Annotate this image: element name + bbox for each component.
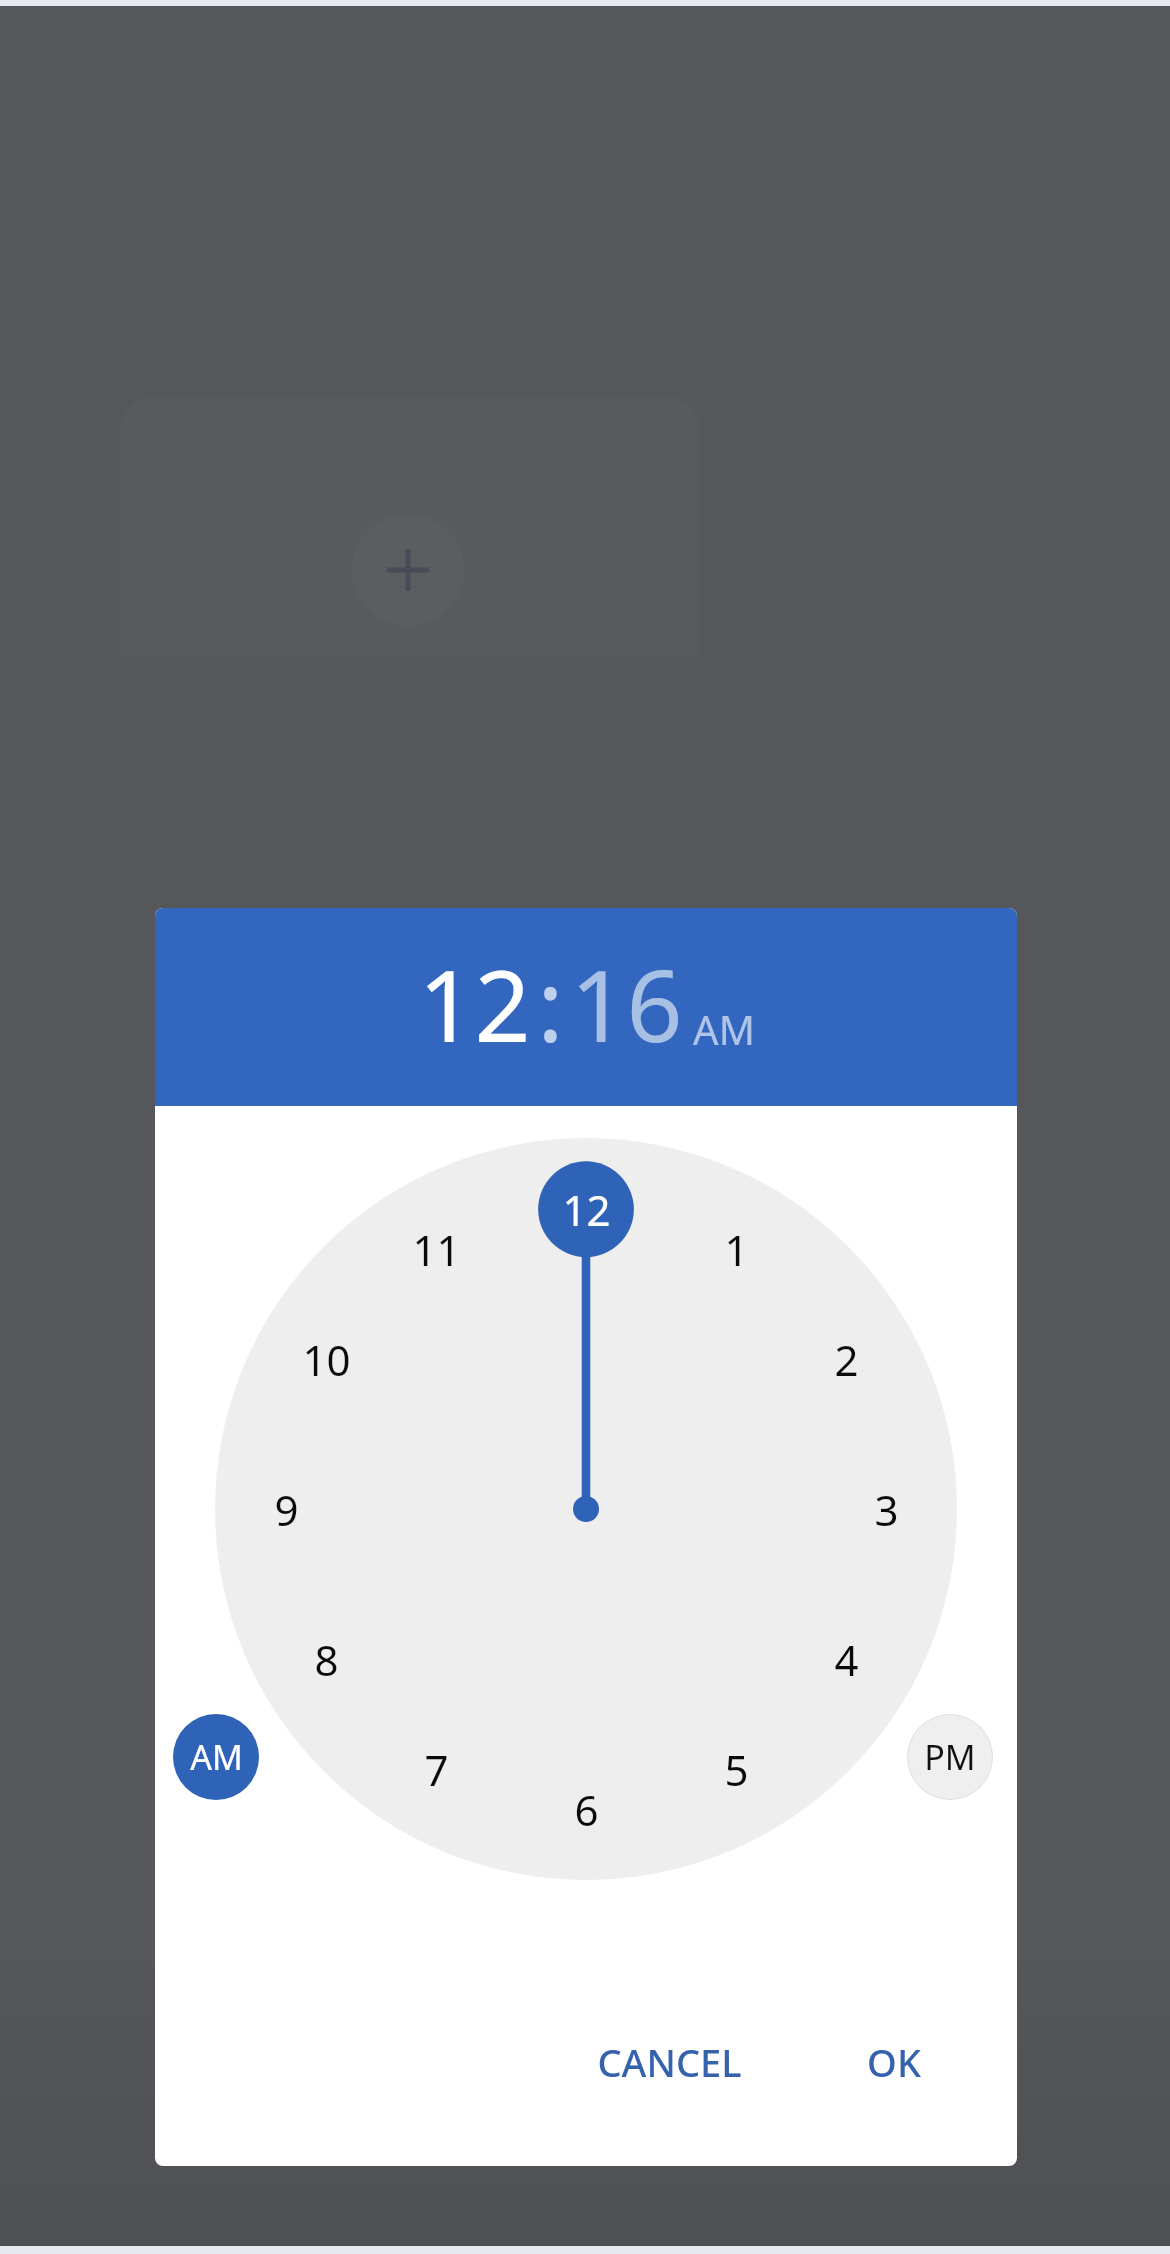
staticText: 1: [724, 1221, 749, 1278]
staticText: PM: [924, 1734, 976, 1780]
staticText: :: [537, 937, 564, 1070]
button[interactable]: 16: [570, 937, 683, 1070]
button[interactable]: 12: [418, 937, 531, 1070]
button[interactable]: CANCEL: [597, 2036, 742, 2088]
staticText: 6: [574, 1781, 599, 1838]
staticText: 12: [562, 1181, 611, 1238]
button[interactable]: OK: [867, 2036, 921, 2088]
staticText: 4: [834, 1631, 859, 1688]
staticText: 9: [274, 1481, 299, 1538]
staticText: 11: [412, 1221, 461, 1278]
staticText: 10: [302, 1331, 351, 1388]
staticText: AM: [190, 1734, 243, 1780]
button[interactable]: AM: [693, 1002, 755, 1056]
staticText: 2: [834, 1331, 859, 1388]
button[interactable]: Clock face, hour selection: [215, 1138, 957, 1880]
staticText: 8: [314, 1631, 339, 1688]
button[interactable]: AM: [173, 1714, 259, 1800]
staticText: 7: [424, 1741, 449, 1798]
staticText: OK: [867, 2036, 921, 2088]
staticText: 3: [874, 1481, 899, 1538]
staticText: CANCEL: [597, 2036, 742, 2088]
button[interactable]: PM: [907, 1714, 993, 1800]
staticText: 5: [724, 1741, 749, 1798]
